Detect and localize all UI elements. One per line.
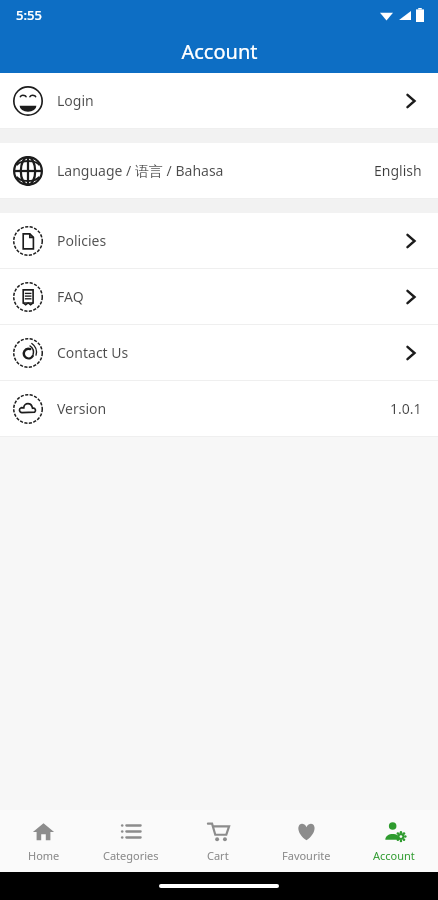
other: Account	[383, 820, 406, 843]
staticText: Account	[373, 848, 415, 863]
button[interactable]: Categories	[87, 810, 174, 872]
staticText: Home	[28, 848, 60, 863]
button[interactable]: Policies	[0, 213, 438, 269]
button[interactable]: Account	[350, 810, 438, 872]
staticText: Account	[181, 38, 258, 65]
staticText: Favourite	[282, 848, 331, 863]
staticText: Policies	[57, 231, 400, 250]
button[interactable]: Cart	[174, 810, 262, 872]
staticText: Version	[57, 399, 390, 418]
staticText: Login	[57, 91, 400, 110]
staticText: FAQ	[57, 287, 400, 306]
staticText: 1.0.1	[390, 399, 422, 418]
button[interactable]: Contact Us	[0, 325, 438, 381]
staticText: Contact Us	[57, 343, 400, 362]
button[interactable]: Favourite	[262, 810, 350, 872]
button[interactable]: FAQ	[0, 269, 438, 325]
staticText: English	[374, 161, 422, 180]
button[interactable]: Language / 语言 / Bahasa	[0, 143, 438, 199]
button[interactable]: Home	[0, 810, 87, 872]
staticText: Language / 语言 / Bahasa	[57, 161, 374, 180]
staticText: Categories	[103, 848, 159, 863]
staticText: 5:55	[16, 6, 42, 24]
button[interactable]: Login	[0, 73, 438, 129]
button[interactable]: Version	[0, 381, 438, 436]
staticText: Cart	[207, 848, 229, 863]
